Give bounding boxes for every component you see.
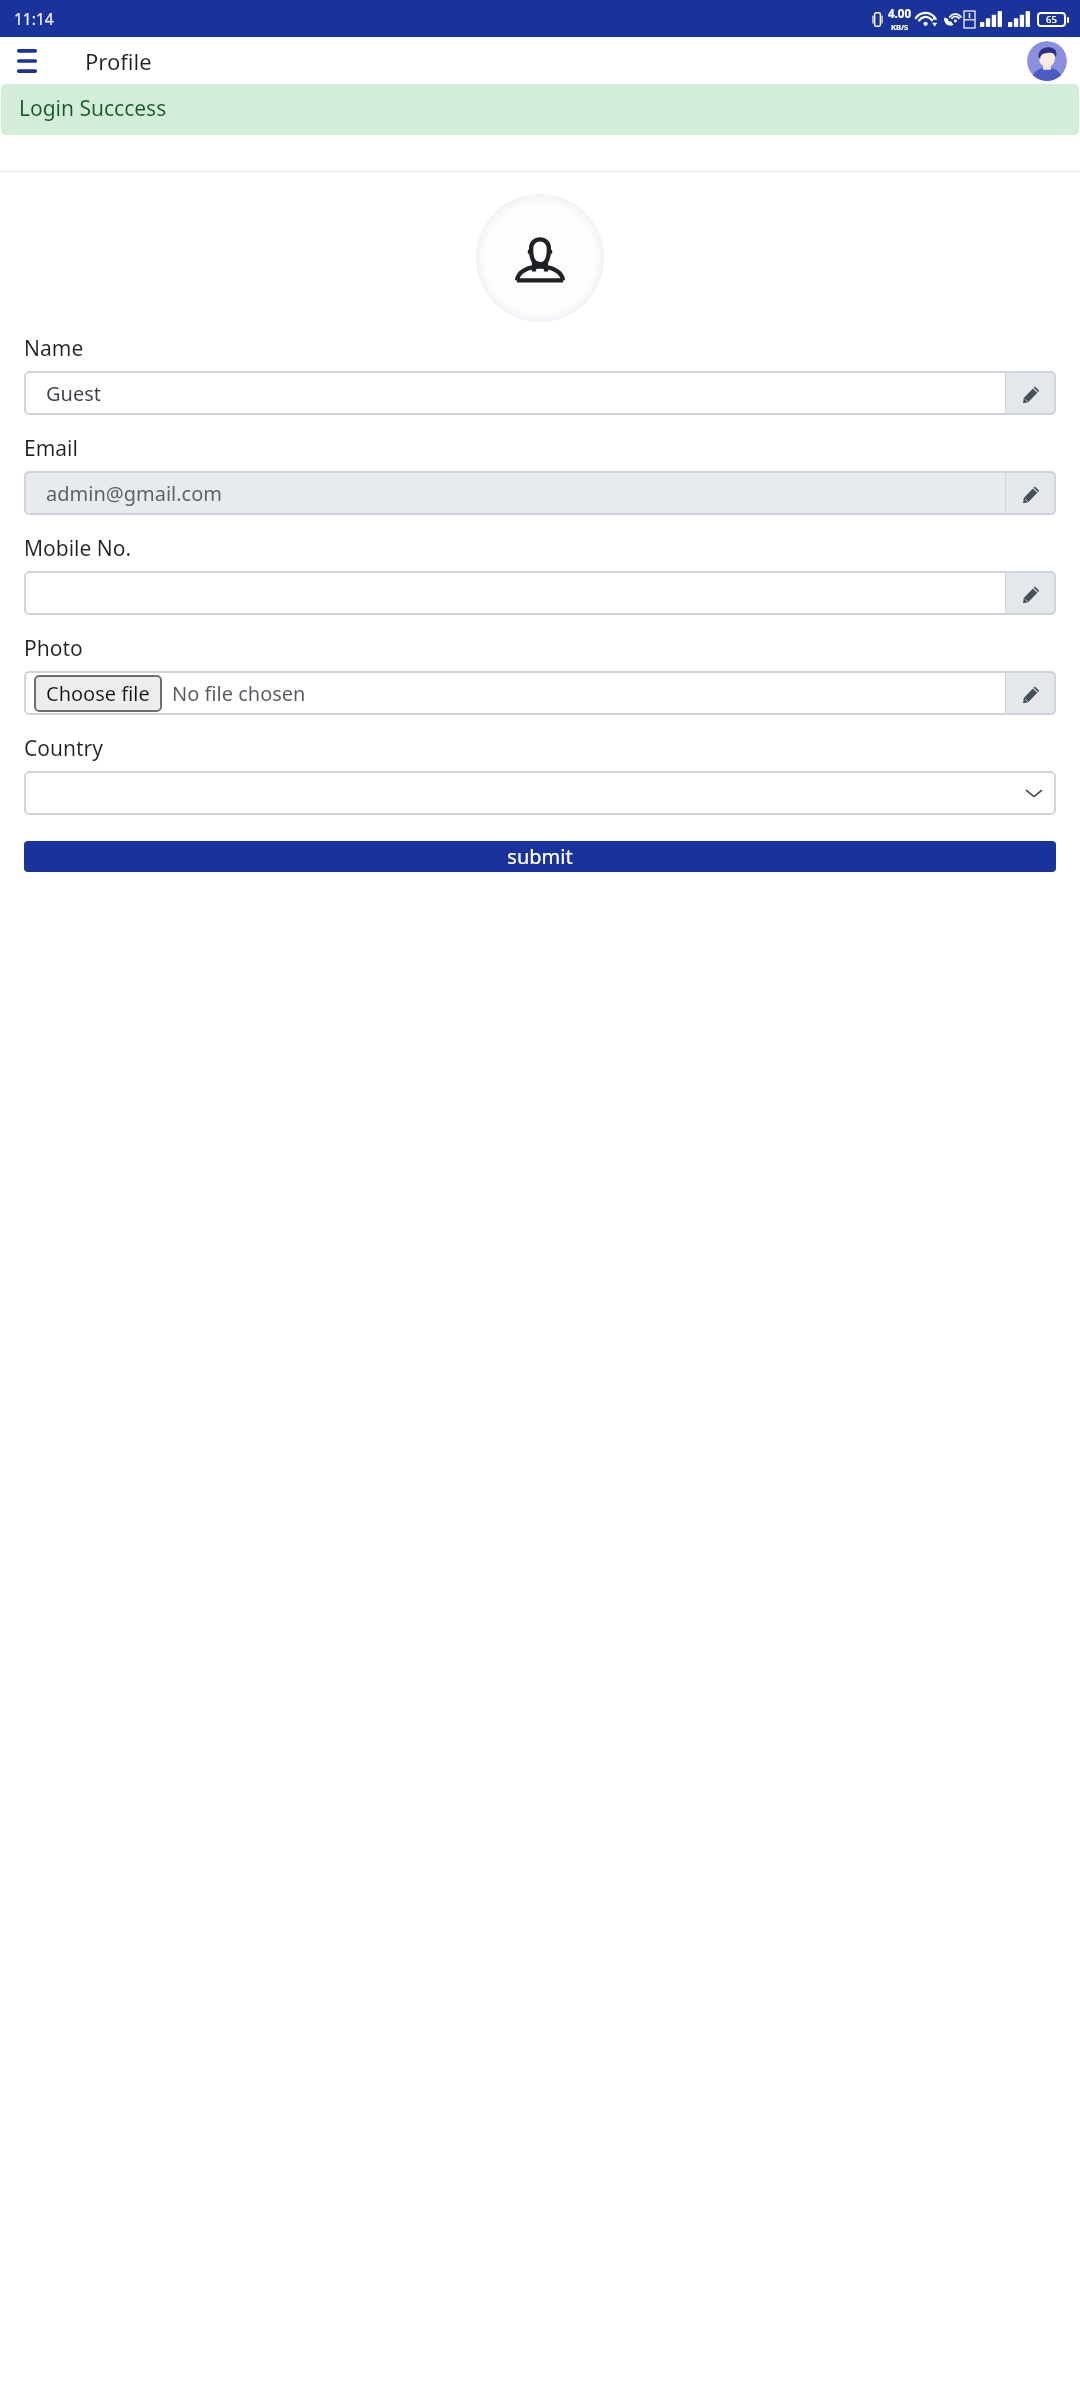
button[interactable]: Edit	[1006, 671, 1056, 715]
staticText: Name	[24, 334, 84, 363]
staticText: admin@gmail.com	[46, 480, 223, 507]
button[interactable]: Open navigation menu	[8, 42, 46, 80]
staticText: Profile	[85, 46, 152, 76]
button[interactable]: Account	[1027, 41, 1067, 81]
button[interactable]: Guest	[24, 371, 1056, 415]
staticText: Photo	[24, 634, 83, 663]
button[interactable]: Edit	[24, 571, 1056, 615]
staticText: Choose file	[46, 680, 150, 707]
button[interactable]: Choose file	[24, 671, 1056, 715]
staticText: 65	[1046, 13, 1057, 26]
staticText: Guest	[46, 380, 101, 407]
staticText: Email	[24, 434, 78, 463]
button[interactable]: Login Succcess	[1, 84, 1079, 135]
staticText: Login Succcess	[19, 94, 167, 123]
button[interactable]: submit	[24, 841, 1056, 872]
staticText: Country	[24, 734, 103, 763]
button[interactable]: Select country	[24, 771, 1056, 815]
button[interactable]: Edit	[1006, 371, 1056, 415]
button[interactable]: Choose file	[34, 675, 162, 712]
button[interactable]: Edit	[1006, 571, 1056, 615]
staticText: submit	[507, 843, 573, 870]
staticText: 4.00	[888, 6, 911, 22]
staticText: Mobile No.	[24, 534, 132, 563]
staticText: 11:14	[14, 8, 54, 29]
button[interactable]: Edit	[1006, 471, 1056, 515]
button[interactable]: admin@gmail.com	[24, 471, 1056, 515]
staticText: KB/S	[891, 22, 909, 32]
staticText: No file chosen	[172, 680, 306, 707]
